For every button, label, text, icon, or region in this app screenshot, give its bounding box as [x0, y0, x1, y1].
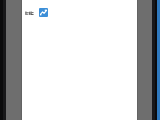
button[interactable]: Label — [25, 9, 34, 17]
button[interactable]: Chart — [39, 8, 48, 17]
